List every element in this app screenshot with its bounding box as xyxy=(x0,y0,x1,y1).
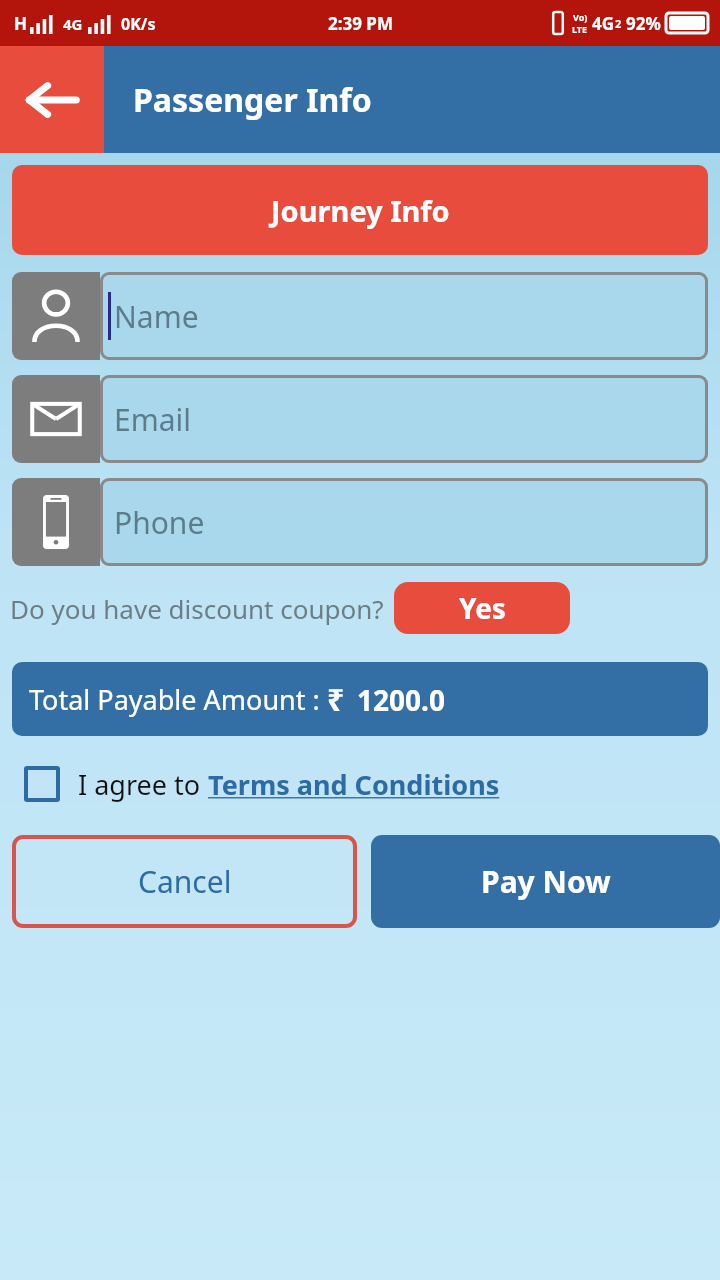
button[interactable]: Journey Info xyxy=(12,165,708,255)
staticText: 2 xyxy=(615,16,622,31)
staticText: Email xyxy=(114,399,192,440)
staticText: Vo) xyxy=(573,11,588,23)
staticText: 0K/s xyxy=(121,13,156,35)
button[interactable]: Back xyxy=(0,46,104,153)
button[interactable]: Cancel xyxy=(12,835,357,928)
button[interactable]: Yes xyxy=(394,582,570,634)
button[interactable]: Total Payable Amount : xyxy=(12,662,708,736)
staticText: Total Payable Amount : xyxy=(29,681,327,718)
staticText: H xyxy=(14,12,28,35)
staticText: 4G xyxy=(63,14,83,34)
staticText: Name xyxy=(114,296,199,337)
staticText: Do you have discount coupon? xyxy=(10,591,384,626)
button[interactable]: Terms and Conditions xyxy=(208,766,500,803)
button[interactable]: Pay Now xyxy=(371,835,720,928)
staticText: 2:39 PM xyxy=(328,12,393,35)
staticText: 4G xyxy=(592,12,615,35)
staticText: Yes xyxy=(459,589,506,627)
staticText: I agree to xyxy=(78,766,208,803)
button[interactable]: Phone xyxy=(12,478,708,566)
staticText: Pay Now xyxy=(481,861,611,902)
staticText: Cancel xyxy=(138,861,232,902)
staticText: Phone xyxy=(114,502,205,543)
staticText: Passenger Info xyxy=(133,78,372,122)
staticText: ₹ xyxy=(327,679,345,720)
staticText: 92% xyxy=(626,12,661,35)
button[interactable]: Name xyxy=(12,272,708,360)
staticText: LTE xyxy=(572,23,588,35)
button[interactable]: I agree to xyxy=(0,758,720,810)
button[interactable]: Email xyxy=(12,375,708,463)
staticText: Journey Info xyxy=(271,191,450,230)
staticText: 1200.0 xyxy=(357,681,445,719)
